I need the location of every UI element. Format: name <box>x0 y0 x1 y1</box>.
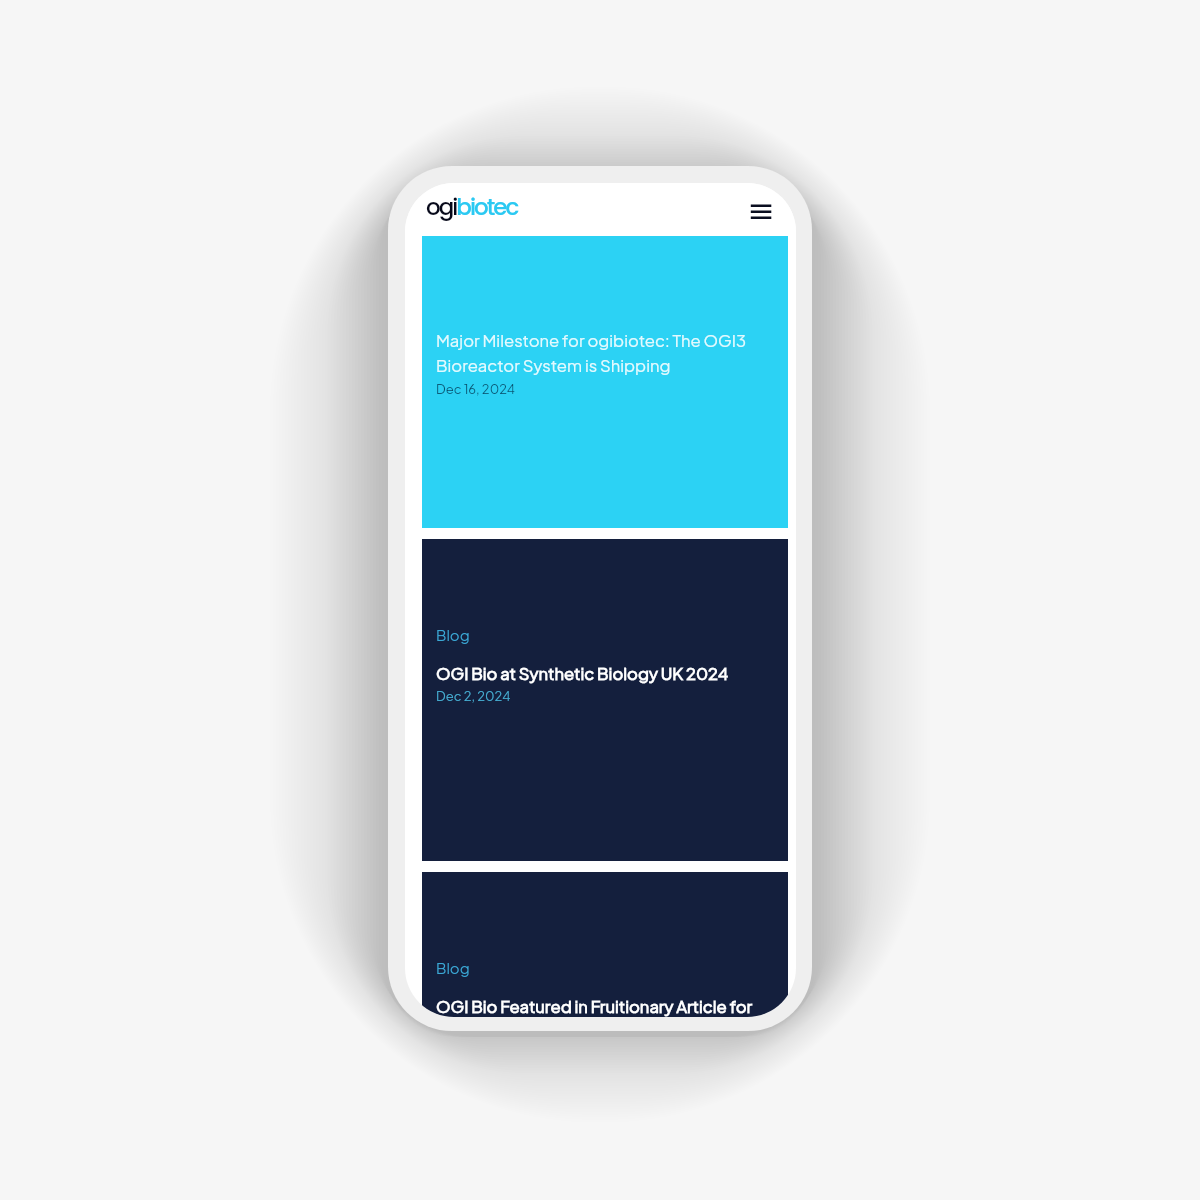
staticText: Blog <box>436 958 470 977</box>
staticText: OGI Bio at Synthetic Biology UK 2024 <box>436 663 729 684</box>
staticText: ogibiotec <box>426 191 518 223</box>
button[interactable]: Blog <box>422 539 788 861</box>
staticText: Blog <box>436 625 470 644</box>
staticText: Dec 16, 2024 <box>436 381 516 397</box>
button[interactable]: Blog <box>422 872 788 1017</box>
button[interactable]: Open navigation menu <box>742 197 780 225</box>
staticText: Dec 2, 2024 <box>436 688 511 704</box>
staticText: OGI Bio Featured in Fruitionary Article … <box>436 996 753 1017</box>
button[interactable]: Major Milestone for ogibiotec: The OGI3 … <box>422 236 788 528</box>
staticText: Major Milestone for ogibiotec: The OGI3 … <box>436 327 747 377</box>
